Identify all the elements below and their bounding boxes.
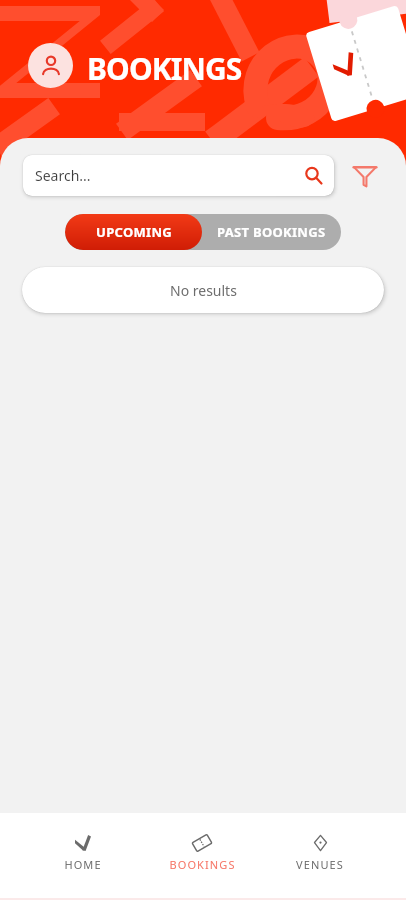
button[interactable]: UPCOMING bbox=[65, 214, 202, 250]
staticText: No results bbox=[170, 281, 237, 300]
staticText: Search... bbox=[35, 166, 91, 185]
staticText: HOME bbox=[64, 857, 102, 872]
button[interactable]: Profile bbox=[28, 43, 73, 88]
staticText: VENUES bbox=[296, 857, 344, 872]
staticText: BOOKINGS bbox=[169, 857, 236, 872]
staticText: BOOKINGS bbox=[87, 48, 242, 89]
staticText: UPCOMING bbox=[96, 223, 172, 241]
button[interactable]: Filter bbox=[352, 163, 378, 189]
button[interactable]: PAST BOOKINGS bbox=[202, 214, 341, 250]
staticText: PAST BOOKINGS bbox=[217, 223, 326, 241]
button[interactable]: BOOKINGS bbox=[157, 813, 247, 872]
button[interactable]: HOME bbox=[38, 813, 128, 872]
button[interactable]: Search... bbox=[23, 155, 334, 196]
button[interactable]: No results bbox=[22, 267, 384, 313]
button[interactable]: VENUES bbox=[275, 813, 365, 872]
